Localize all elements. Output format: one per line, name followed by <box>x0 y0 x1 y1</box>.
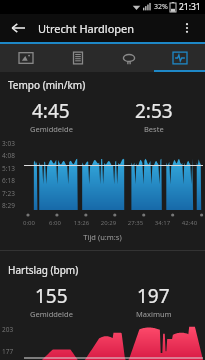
staticText: 5:13 <box>2 164 24 173</box>
staticText: 2:53 <box>135 98 173 124</box>
staticText: 197 <box>137 283 170 309</box>
staticText: Maximum <box>136 309 172 319</box>
staticText: Utrecht Hardlopen <box>38 21 135 36</box>
staticText: 6:18 <box>2 176 24 185</box>
staticText: 8:29 <box>2 201 24 210</box>
staticText: 155 <box>35 283 68 309</box>
staticText: Hartslag (bpm) <box>8 263 79 277</box>
staticText: 20:29 <box>95 219 122 227</box>
staticText: Gemiddelde <box>30 124 73 134</box>
staticText: Tijd (u:m:s) <box>0 232 205 242</box>
button[interactable]: Details <box>52 44 103 72</box>
button[interactable]: Charts <box>154 44 205 72</box>
staticText: Gemiddelde <box>30 309 73 319</box>
staticText: 32% <box>154 2 168 12</box>
button[interactable]: Map <box>0 44 52 72</box>
staticText: 203 <box>2 325 14 334</box>
staticText: 34:17 <box>149 219 176 227</box>
staticText: 27:35 <box>122 219 149 227</box>
staticText: 177 <box>2 347 14 356</box>
staticText: Beste <box>144 124 164 134</box>
staticText: 21:31 <box>179 1 201 13</box>
staticText: 13:26 <box>68 219 95 227</box>
staticText: 7:23 <box>2 189 24 198</box>
staticText: 3:03 <box>2 139 24 148</box>
staticText: 0:00 <box>16 219 42 227</box>
staticText: 6:00 <box>42 219 68 227</box>
staticText: 4:45 <box>32 98 70 124</box>
staticText: 4:08 <box>2 151 24 160</box>
staticText: 42:40 <box>176 219 203 227</box>
button[interactable]: Back <box>6 16 30 40</box>
button[interactable]: More options <box>175 16 199 40</box>
staticText: Tempo (min/km) <box>8 78 86 92</box>
button[interactable]: Laps <box>103 44 154 72</box>
